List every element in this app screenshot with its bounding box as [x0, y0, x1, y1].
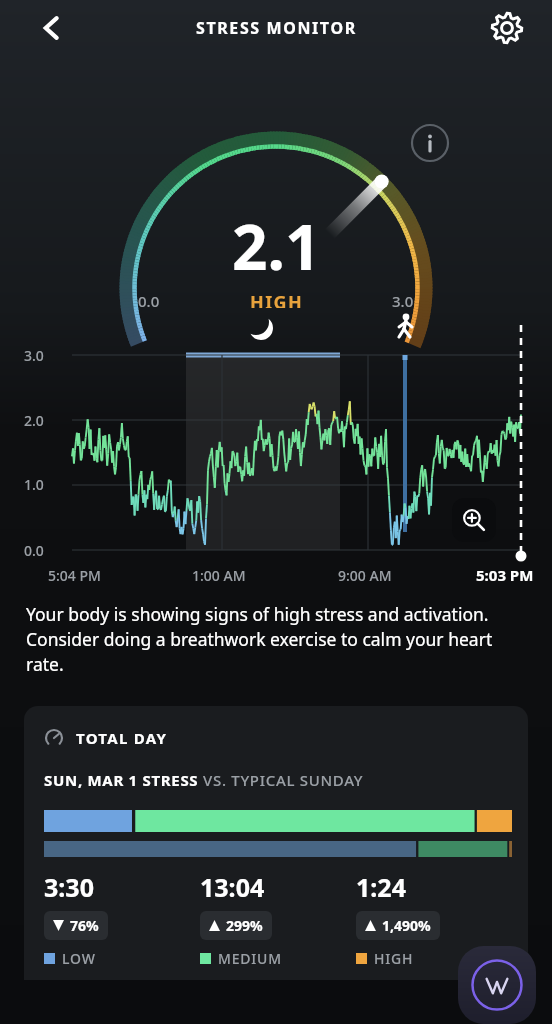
- button[interactable]: TOTAL DAY: [24, 706, 528, 980]
- button[interactable]: Settings: [484, 5, 530, 51]
- staticText: STRESS MONITOR: [196, 17, 357, 39]
- staticText: 0.0: [24, 541, 44, 560]
- staticText: 9:00 AM: [338, 566, 392, 585]
- staticText: 1:24: [356, 870, 406, 904]
- staticText: 3.0: [392, 291, 414, 308]
- staticText: 0.0: [138, 291, 160, 308]
- staticText: HIGH: [250, 290, 304, 308]
- staticText: VS. TYPICAL SUNDAY: [203, 770, 364, 790]
- staticText: HIGH: [374, 949, 414, 968]
- staticText: Your body is showing signs of high stres…: [26, 602, 526, 676]
- staticText: 76%: [70, 916, 99, 935]
- staticText: MEDIUM: [218, 949, 282, 968]
- staticText: 299%: [226, 916, 263, 935]
- staticText: 3:30: [44, 870, 94, 904]
- staticText: TOTAL DAY: [76, 728, 168, 748]
- button[interactable]: Info: [0, 112, 448, 308]
- button[interactable]: 76%: [44, 911, 108, 940]
- button[interactable]: 299%: [200, 911, 272, 940]
- staticText: 5:03 PM: [476, 565, 534, 585]
- staticText: 13:04: [200, 870, 265, 904]
- staticText: 3.0: [24, 346, 44, 365]
- staticText: 1,490%: [382, 916, 431, 935]
- button[interactable]: Back: [30, 6, 74, 50]
- staticText: 1:00 AM: [192, 566, 246, 585]
- staticText: 5:04 PM: [48, 566, 101, 585]
- staticText: SUN, MAR 1 STRESS: [44, 770, 203, 790]
- button[interactable]: Assistant: [458, 946, 536, 1024]
- staticText: LOW: [62, 949, 96, 968]
- staticText: 2.0: [24, 411, 44, 430]
- staticText: 1.0: [24, 475, 44, 494]
- button[interactable]: 1,490%: [356, 911, 440, 940]
- button[interactable]: Zoom in: [452, 498, 496, 542]
- staticText: 2.1: [232, 204, 321, 288]
